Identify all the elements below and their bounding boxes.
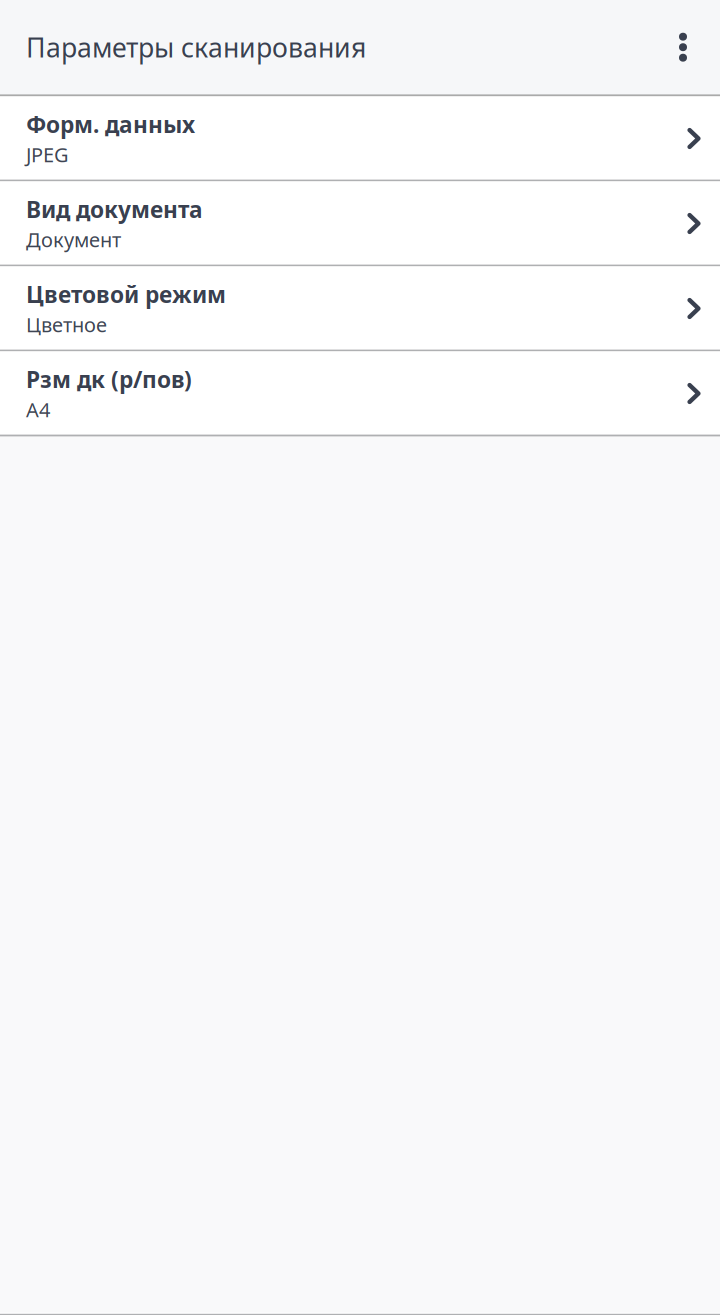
button[interactable]: More options (654, 18, 712, 76)
staticText: Цветовой режим (26, 279, 226, 309)
staticText: Документ (26, 226, 121, 253)
button[interactable]: Цветовой режим (0, 266, 720, 351)
staticText: Параметры сканирования (26, 29, 366, 65)
staticText: Вид документа (26, 194, 203, 224)
staticText: Цветное (26, 311, 107, 338)
staticText: Форм. данных (26, 109, 195, 139)
button[interactable]: Рзм дк (р/пов) (0, 351, 720, 436)
staticText: Рзм дк (р/пов) (26, 364, 192, 394)
button[interactable]: Форм. данных (0, 96, 720, 181)
button[interactable]: Вид документа (0, 181, 720, 266)
staticText: A4 (26, 396, 50, 423)
staticText: JPEG (26, 141, 69, 168)
